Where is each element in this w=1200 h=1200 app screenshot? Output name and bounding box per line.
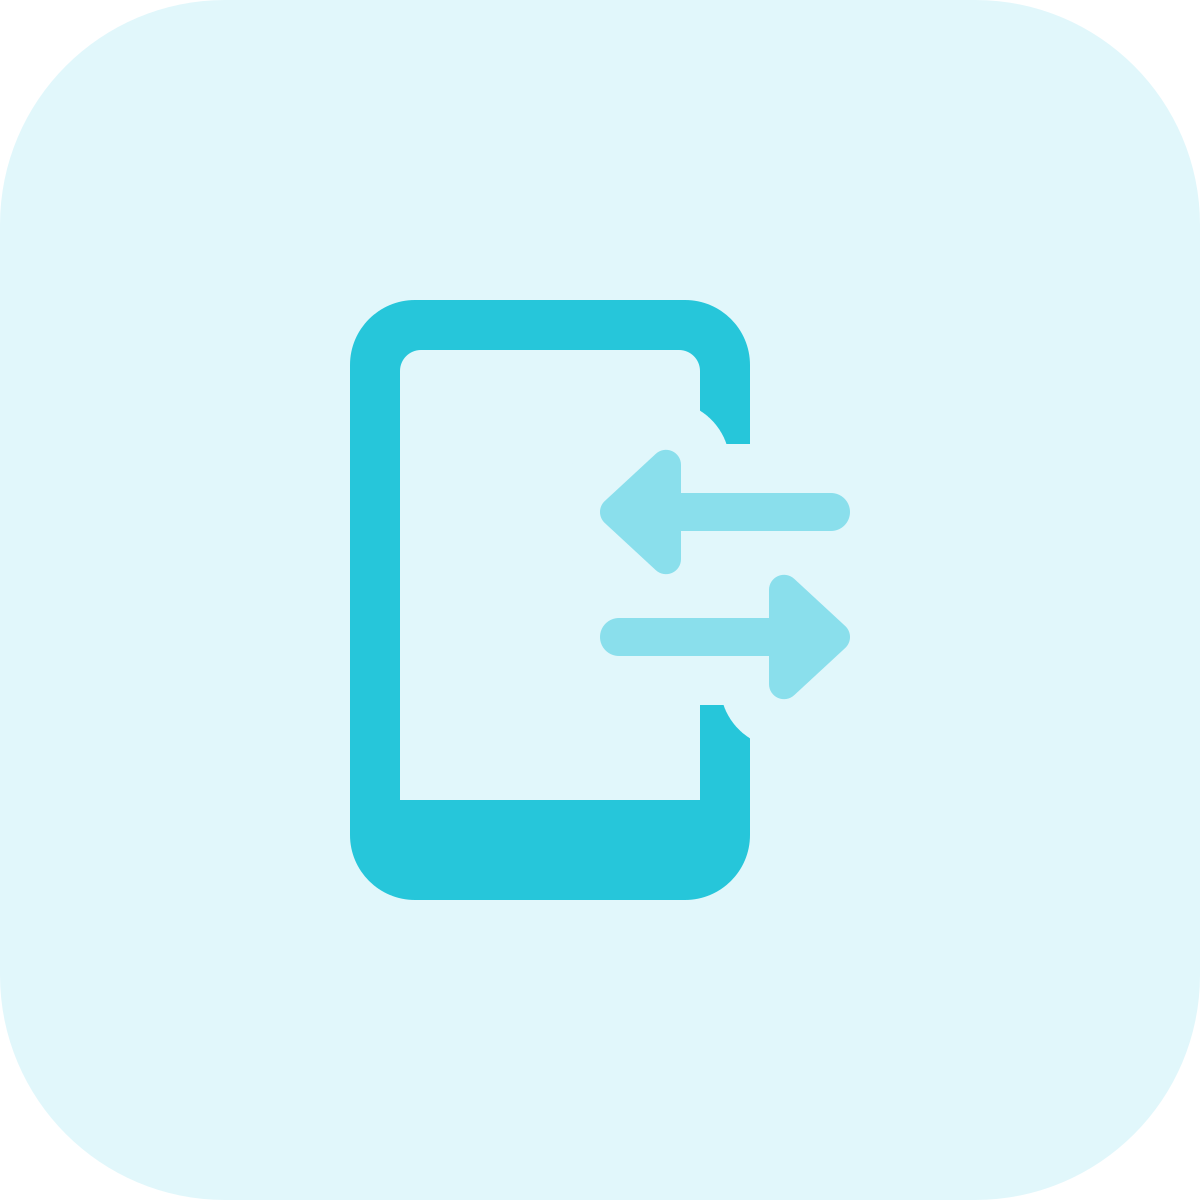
button[interactable]: Transfer data between devices — [0, 0, 1200, 1200]
